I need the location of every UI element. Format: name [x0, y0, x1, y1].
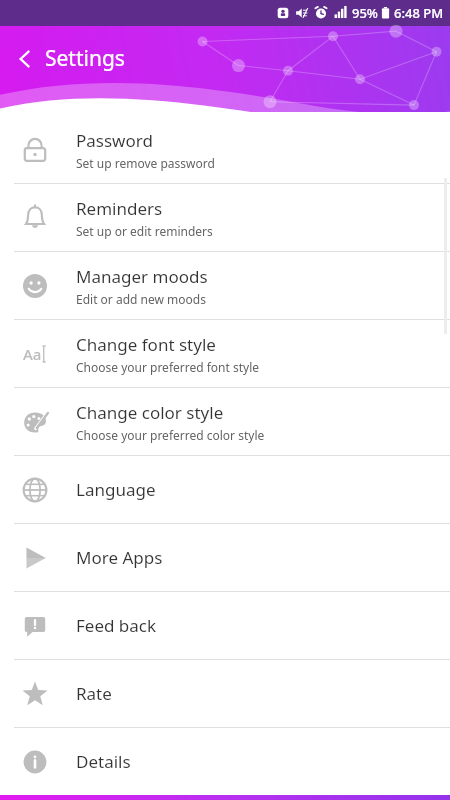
button[interactable]: Rate [0, 660, 450, 727]
staticText: More Apps [76, 546, 163, 569]
button[interactable]: Manager moods [0, 252, 450, 319]
button[interactable]: More Apps [0, 524, 450, 591]
staticText: Language [76, 478, 156, 501]
button[interactable]: Language [0, 456, 450, 523]
staticText: Change font style [76, 333, 216, 356]
staticText: Settings [45, 44, 125, 73]
staticText: Feed back [76, 614, 157, 637]
staticText: 95% [352, 4, 378, 22]
button[interactable]: Change color style [0, 388, 450, 455]
staticText: Set up or edit reminders [76, 223, 213, 239]
staticText: Aa [23, 344, 42, 364]
staticText: Manager moods [76, 265, 208, 288]
staticText: 6:48 PM [394, 4, 444, 22]
staticText: Choose your preferred color style [76, 427, 265, 443]
button[interactable]: Details [0, 728, 450, 795]
staticText: Change color style [76, 401, 224, 424]
staticText: Reminders [76, 197, 163, 220]
staticText: Edit or add new moods [76, 291, 206, 307]
staticText: Details [76, 750, 131, 773]
staticText: Rate [76, 682, 112, 705]
button[interactable]: Aa [0, 320, 450, 387]
button[interactable]: Feed back [0, 592, 450, 659]
staticText: Set up remove password [76, 155, 215, 171]
button[interactable]: Back [10, 42, 129, 75]
button[interactable]: Reminders [0, 184, 450, 251]
staticText: Choose your preferred font style [76, 359, 260, 375]
staticText: Password [76, 129, 153, 152]
button[interactable]: Password [0, 116, 450, 183]
